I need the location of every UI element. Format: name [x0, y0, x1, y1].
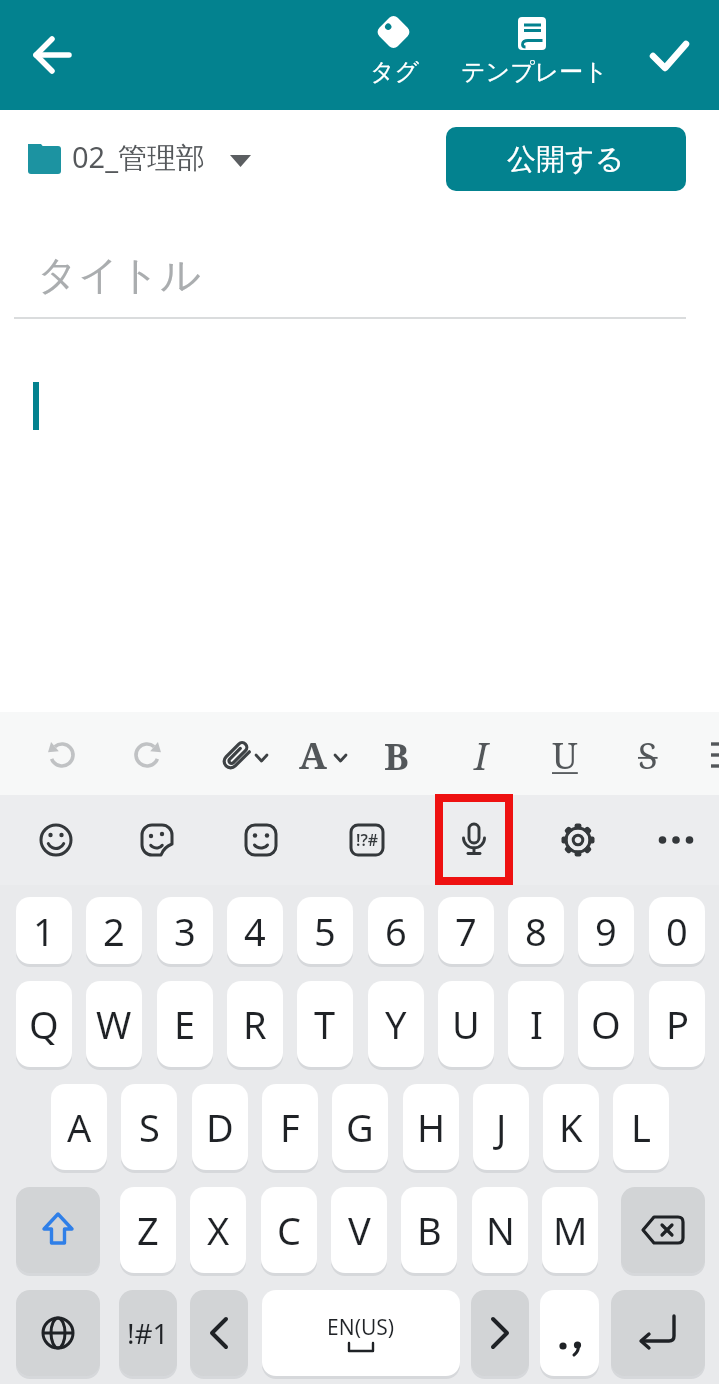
staticText: Z: [137, 1204, 159, 1256]
button[interactable]: [652, 816, 700, 864]
staticText: Y: [385, 998, 407, 1050]
button[interactable]: I: [461, 728, 501, 782]
button[interactable]: U: [438, 981, 494, 1067]
button[interactable]: [16, 1187, 100, 1273]
staticText: B: [384, 730, 409, 780]
button[interactable]: B: [401, 1187, 457, 1273]
button[interactable]: [212, 729, 274, 781]
staticText: R: [243, 998, 267, 1050]
staticText: 4: [244, 905, 266, 957]
button[interactable]: 0: [649, 897, 705, 964]
button[interactable]: R: [227, 981, 283, 1067]
button[interactable]: [554, 816, 602, 864]
staticText: N: [486, 1204, 515, 1256]
staticText: A: [67, 1101, 92, 1153]
button[interactable]: [471, 1290, 529, 1376]
staticText: F: [280, 1101, 300, 1153]
button[interactable]: 9: [578, 897, 634, 964]
button[interactable]: V: [331, 1187, 387, 1273]
button[interactable]: J: [473, 1084, 529, 1170]
staticText: テンプレート: [461, 57, 608, 87]
staticText: I: [474, 729, 488, 781]
staticText: 02_管理部: [72, 137, 206, 177]
staticText: 公開する: [507, 141, 625, 178]
staticText: M: [553, 1204, 588, 1256]
button[interactable]: U: [545, 728, 585, 782]
button[interactable]: M: [542, 1187, 598, 1273]
staticText: L: [631, 1101, 651, 1153]
button[interactable]: S: [628, 728, 668, 782]
button[interactable]: A: [294, 728, 356, 782]
button[interactable]: [450, 816, 498, 864]
button[interactable]: Q: [16, 981, 72, 1067]
button[interactable]: [32, 816, 80, 864]
staticText: J: [496, 1101, 507, 1153]
staticText: T: [314, 998, 336, 1050]
staticText: H: [417, 1101, 446, 1153]
staticText: U: [452, 998, 480, 1050]
staticText: S: [139, 1101, 160, 1153]
button[interactable]: [237, 816, 285, 864]
button[interactable]: Z: [120, 1187, 176, 1273]
staticText: V: [348, 1204, 371, 1256]
button[interactable]: H: [403, 1084, 459, 1170]
button[interactable]: I: [508, 981, 564, 1067]
button[interactable]: X: [190, 1187, 246, 1273]
button[interactable]: [40, 733, 84, 777]
button[interactable]: O: [578, 981, 634, 1067]
button[interactable]: 7: [438, 897, 494, 964]
staticText: 6: [385, 905, 407, 957]
button[interactable]: !?#: [343, 816, 391, 864]
button[interactable]: [16, 1290, 100, 1376]
button[interactable]: [540, 1290, 599, 1376]
button[interactable]: 公開する: [446, 127, 686, 191]
button[interactable]: W: [86, 981, 142, 1067]
staticText: C: [277, 1204, 302, 1256]
button[interactable]: !#1: [119, 1290, 177, 1376]
button[interactable]: C: [261, 1187, 317, 1273]
staticText: I: [530, 998, 543, 1050]
button[interactable]: 02_管理部: [16, 134, 266, 194]
button[interactable]: P: [649, 981, 705, 1067]
button[interactable]: K: [543, 1084, 599, 1170]
button[interactable]: 5: [297, 897, 353, 964]
button[interactable]: 3: [157, 897, 213, 964]
button[interactable]: 2: [86, 897, 142, 964]
staticText: U: [552, 731, 578, 780]
button[interactable]: [190, 1290, 248, 1376]
button[interactable]: A: [51, 1084, 107, 1170]
staticText: G: [346, 1101, 374, 1153]
button[interactable]: E: [157, 981, 213, 1067]
staticText: O: [591, 998, 621, 1050]
staticText: 3: [174, 905, 196, 957]
staticText: タイトル: [37, 250, 201, 300]
button[interactable]: N: [472, 1187, 528, 1273]
button[interactable]: [125, 733, 169, 777]
button[interactable]: D: [192, 1084, 248, 1170]
button[interactable]: [133, 816, 181, 864]
button[interactable]: S: [121, 1084, 177, 1170]
button[interactable]: テンプレート: [455, 8, 611, 100]
staticText: E: [174, 998, 196, 1050]
button[interactable]: [26, 29, 78, 81]
staticText: 9: [595, 905, 617, 957]
button[interactable]: [640, 28, 700, 84]
button[interactable]: 6: [368, 897, 424, 964]
staticText: 2: [103, 905, 125, 957]
button[interactable]: Y: [368, 981, 424, 1067]
button[interactable]: B: [376, 728, 416, 782]
staticText: B: [417, 1204, 442, 1256]
staticText: P: [666, 998, 689, 1050]
staticText: 8: [525, 905, 547, 957]
button[interactable]: 1: [16, 897, 72, 964]
button[interactable]: タグ: [355, 8, 433, 100]
button[interactable]: [621, 1187, 705, 1273]
button[interactable]: [611, 1290, 705, 1376]
button[interactable]: EN(US): [262, 1290, 460, 1376]
button[interactable]: G: [332, 1084, 388, 1170]
button[interactable]: 4: [227, 897, 283, 964]
button[interactable]: 8: [508, 897, 564, 964]
button[interactable]: L: [613, 1084, 669, 1170]
button[interactable]: T: [297, 981, 353, 1067]
button[interactable]: F: [262, 1084, 318, 1170]
